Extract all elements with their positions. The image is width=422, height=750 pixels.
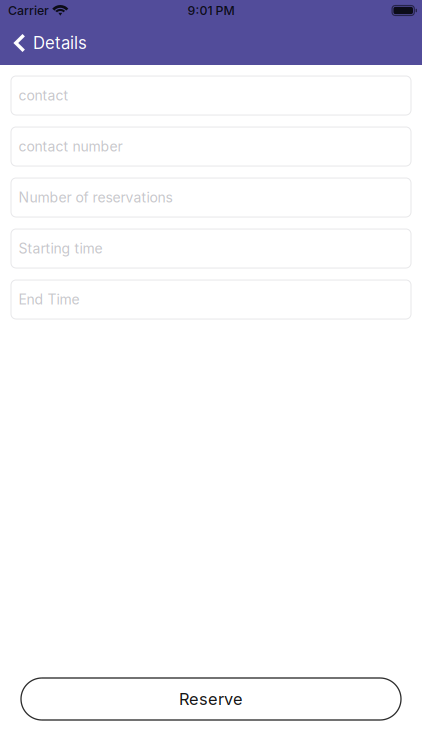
staticText: Reserve — [179, 689, 243, 709]
staticText: contact — [18, 87, 68, 104]
staticText: Carrier — [8, 3, 49, 18]
button[interactable]: contact number — [11, 127, 411, 166]
staticText: Details — [33, 33, 87, 53]
button[interactable]: Number of reservations — [11, 178, 411, 217]
staticText: Number of reservations — [18, 189, 172, 206]
button[interactable]: contact — [11, 76, 411, 115]
button[interactable]: Starting time — [11, 229, 411, 268]
staticText: Starting time — [18, 240, 102, 257]
button[interactable]: Back to Details — [0, 21, 99, 65]
staticText: End Time — [18, 291, 79, 308]
staticText: contact number — [18, 138, 122, 155]
button[interactable]: Reserve — [21, 678, 401, 720]
button[interactable]: End Time — [11, 280, 411, 319]
staticText: 9:01 PM — [187, 3, 234, 18]
